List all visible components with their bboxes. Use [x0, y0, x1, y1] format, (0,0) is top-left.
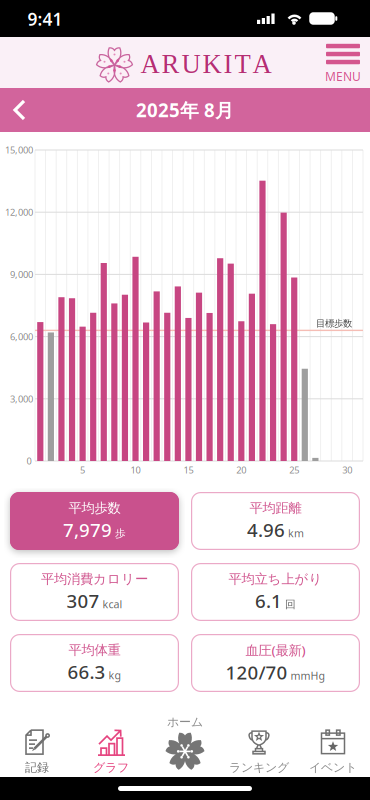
staticText: 25	[289, 464, 299, 476]
staticText: mmHg	[290, 669, 325, 683]
staticText: 6.1	[255, 588, 282, 613]
staticText: 9,000	[10, 268, 33, 281]
staticText: 30	[342, 464, 352, 476]
button[interactable]: MENU	[325, 44, 361, 84]
button[interactable]: ホーム	[148, 704, 222, 773]
staticText: 20	[236, 464, 246, 476]
button[interactable]: 平均距離	[191, 492, 360, 550]
staticText: 6,000	[10, 330, 33, 343]
staticText: 平均体重	[68, 642, 120, 658]
staticText: 9:41	[27, 7, 62, 30]
staticText: イベント	[309, 760, 357, 775]
staticText: km	[288, 526, 304, 540]
staticText: ランキング	[229, 760, 289, 775]
staticText: 平均立ち上がり	[228, 571, 322, 587]
staticText: 記録	[25, 760, 49, 775]
staticText: 307	[66, 588, 99, 613]
button[interactable]	[8, 97, 34, 123]
staticText: A R U K I T A	[140, 49, 271, 79]
staticText: 平均消費カロリー	[41, 571, 148, 587]
staticText: kcal	[102, 597, 122, 611]
button[interactable]: 平均消費カロリー	[10, 563, 179, 621]
staticText: 5	[80, 464, 85, 476]
button[interactable]: 記録	[0, 702, 74, 775]
staticText: グラフ	[93, 760, 129, 775]
staticText: 66.3	[67, 659, 105, 684]
button[interactable]: イベント	[296, 702, 370, 775]
staticText: 0	[26, 455, 31, 467]
button[interactable]: ランキング	[222, 702, 296, 775]
staticText: 15	[183, 464, 193, 476]
staticText: 歩	[115, 527, 126, 540]
staticText: 目標歩数	[316, 318, 352, 329]
staticText: 120/70	[225, 660, 287, 685]
staticText: 2025年 8月	[136, 98, 234, 122]
button[interactable]: 血圧(最新)	[191, 634, 360, 692]
staticText: 3,000	[10, 393, 33, 405]
staticText: 10	[130, 464, 140, 476]
staticText: 15,000	[5, 144, 33, 156]
staticText: 12,000	[5, 206, 33, 218]
button[interactable]: 平均立ち上がり	[191, 563, 360, 621]
staticText: 血圧(最新)	[245, 641, 305, 659]
staticText: 平均距離	[249, 500, 301, 516]
staticText: 平均歩数	[68, 500, 120, 516]
button[interactable]: 平均体重	[10, 634, 179, 692]
staticText: 7,979	[63, 517, 112, 542]
staticText: ホーム	[167, 715, 203, 729]
staticText: MENU	[325, 68, 361, 84]
staticText: 回	[285, 598, 296, 611]
button[interactable]: グラフ	[74, 702, 148, 775]
button[interactable]: 平均歩数	[10, 492, 179, 550]
staticText: 4.96	[247, 517, 285, 542]
staticText: kg	[108, 668, 121, 682]
